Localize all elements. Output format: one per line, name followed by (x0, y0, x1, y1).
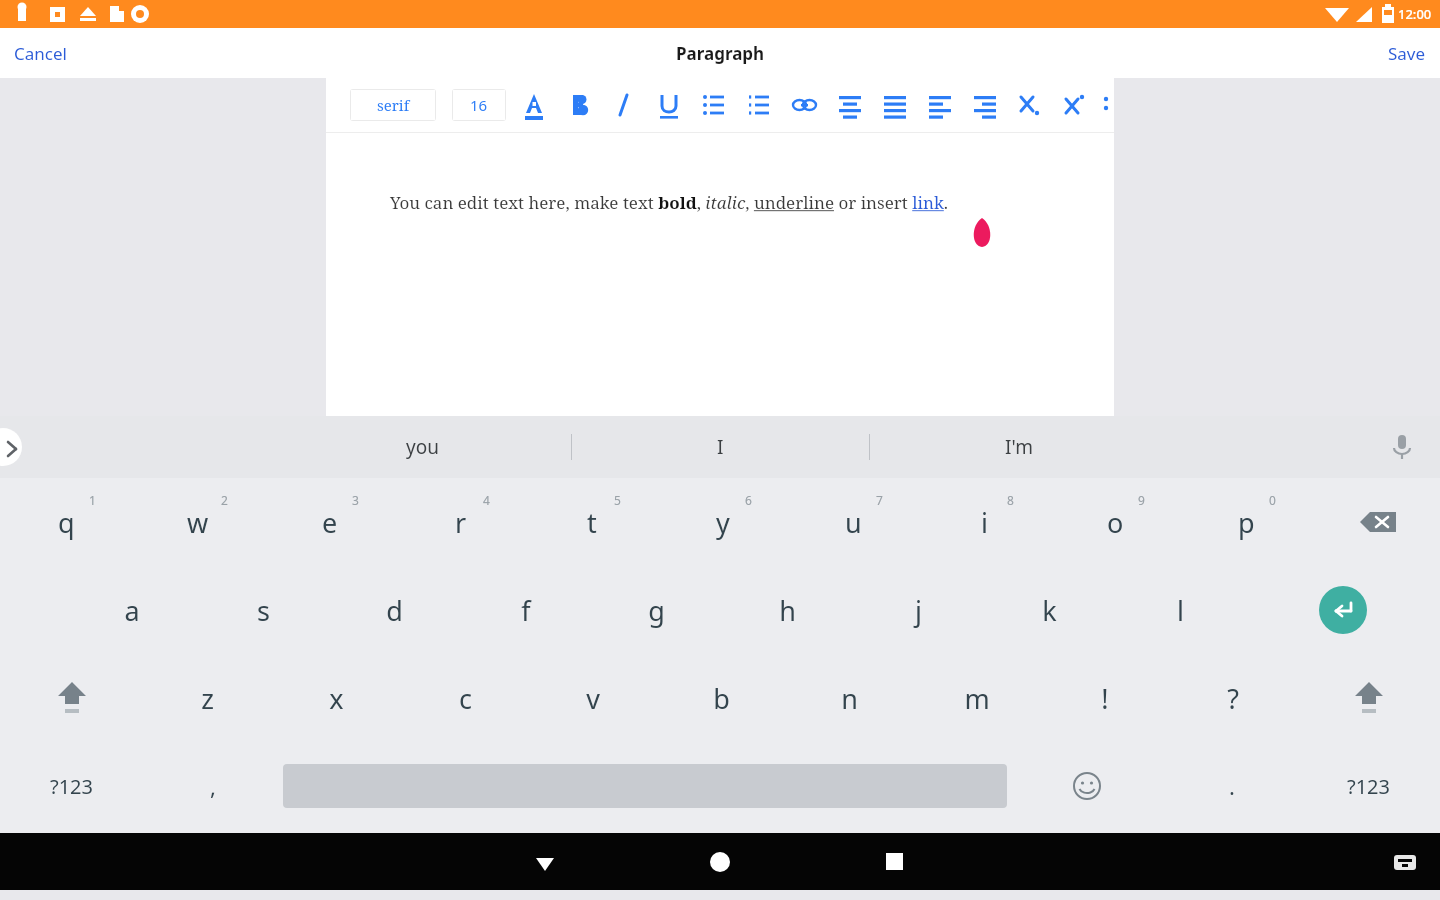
button[interactable]: a (66, 566, 198, 654)
staticText: f (521, 592, 531, 629)
button[interactable]: r (395, 478, 526, 566)
button[interactable]: I (572, 416, 869, 478)
staticText: p (1238, 504, 1255, 541)
staticText: ? (1227, 680, 1239, 717)
button[interactable]: ? (1169, 654, 1297, 742)
staticText: h (779, 592, 796, 629)
staticText: n (841, 680, 858, 717)
button[interactable]: w (132, 478, 264, 566)
button[interactable]: Save (1374, 34, 1440, 73)
button[interactable]: Switch keyboard (1382, 839, 1428, 885)
button[interactable]: Recents (869, 836, 921, 888)
button[interactable]: g (591, 566, 722, 654)
button[interactable]: Shift (0, 654, 143, 742)
button[interactable]: z (143, 654, 272, 742)
button[interactable]: h (722, 566, 853, 654)
button[interactable]: Cancel (0, 34, 81, 73)
button[interactable]: y (657, 478, 788, 566)
staticText: 12:00 (1398, 5, 1432, 23)
button[interactable]: Underline (651, 87, 687, 123)
button[interactable]: e (264, 478, 395, 566)
button[interactable]: Subscript (1012, 87, 1048, 123)
staticText: 6 (745, 492, 752, 508)
button[interactable]: Superscript (1057, 87, 1093, 123)
button[interactable]: x (272, 654, 401, 742)
staticText: s (257, 592, 270, 629)
staticText: b (713, 680, 730, 717)
button[interactable]: Text color (516, 87, 552, 123)
button[interactable]: , (143, 742, 283, 830)
button[interactable]: k (984, 566, 1115, 654)
button[interactable]: Align left (922, 87, 958, 123)
button[interactable]: ?123 (0, 742, 143, 830)
button[interactable]: i (919, 478, 1050, 566)
button[interactable]: . (1167, 742, 1297, 830)
button[interactable]: s (198, 566, 329, 654)
button[interactable]: Home (694, 836, 746, 888)
staticText: 3 (352, 492, 359, 508)
button[interactable]: c (401, 654, 529, 742)
button[interactable]: ?123 (1297, 742, 1440, 830)
button[interactable]: Hide keyboard (519, 836, 571, 888)
button[interactable]: u (788, 478, 919, 566)
button[interactable]: q (0, 478, 132, 566)
button[interactable]: Bold (561, 87, 597, 123)
staticText: z (201, 680, 214, 717)
staticText: , (210, 771, 216, 801)
button[interactable]: Align center (832, 87, 868, 123)
staticText: o (1107, 504, 1124, 541)
button[interactable]: v (529, 654, 657, 742)
button[interactable]: ! (1041, 654, 1169, 742)
staticText: c (459, 680, 472, 717)
staticText: . (1229, 771, 1235, 801)
button[interactable]: Expand suggestions (0, 428, 22, 466)
staticText: k (1042, 592, 1057, 629)
staticText: 9 (1138, 492, 1145, 508)
staticText: You can edit text here, make text bold, … (390, 191, 949, 214)
staticText: serif (377, 95, 410, 115)
button[interactable]: you (274, 416, 571, 478)
button[interactable]: j (853, 566, 984, 654)
staticText: u (845, 504, 862, 541)
button[interactable]: p (1181, 478, 1312, 566)
staticText: i (981, 504, 988, 541)
staticText: ?123 (1347, 773, 1390, 800)
staticText: ?123 (50, 773, 93, 800)
staticText: q (58, 504, 75, 541)
button[interactable]: o (1050, 478, 1181, 566)
button[interactable]: Backspace (1312, 478, 1440, 566)
button[interactable]: Insert link (786, 87, 822, 123)
staticText: t (587, 504, 597, 541)
button[interactable]: Enter (1246, 566, 1440, 654)
button[interactable]: Emoji (1007, 742, 1167, 830)
button[interactable]: Voice input (1384, 429, 1420, 465)
button[interactable]: Justify (877, 87, 913, 123)
staticText: d (386, 592, 403, 629)
button[interactable]: n (785, 654, 913, 742)
button[interactable]: 16 (452, 89, 506, 121)
button[interactable]: Bulleted list (696, 87, 732, 123)
button[interactable]: Italic (606, 87, 642, 123)
staticText: Paragraph (676, 42, 765, 65)
staticText: r (455, 504, 467, 541)
staticText: I (717, 434, 724, 460)
staticText: g (648, 592, 665, 629)
button[interactable]: b (657, 654, 785, 742)
button[interactable]: I'm (870, 416, 1167, 478)
button[interactable]: m (913, 654, 1041, 742)
button[interactable]: Align right (967, 87, 1003, 123)
staticText: 5 (614, 492, 621, 508)
staticText: I'm (1005, 434, 1033, 460)
button[interactable]: serif (350, 89, 436, 121)
button[interactable]: Numbered list (741, 87, 777, 123)
button[interactable]: f (460, 566, 591, 654)
staticText: x (329, 680, 344, 717)
button[interactable]: Shift right (1297, 654, 1440, 742)
staticText: m (964, 680, 990, 717)
button[interactable]: t (526, 478, 657, 566)
staticText: e (322, 504, 338, 541)
button[interactable]: d (329, 566, 460, 654)
staticText: v (586, 680, 600, 717)
button[interactable]: l (1115, 566, 1246, 654)
